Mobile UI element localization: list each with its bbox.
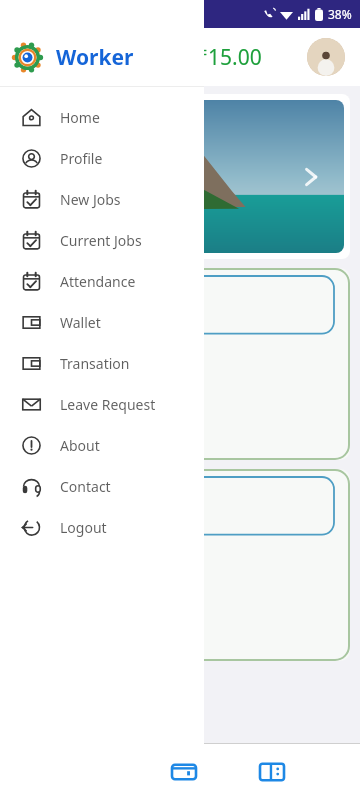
staticText: Current Jobs <box>60 231 142 250</box>
button[interactable]: li <box>10 268 350 460</box>
staticText: Logout <box>60 518 107 537</box>
button[interactable]: About <box>0 425 204 466</box>
button[interactable]: Leave Request <box>0 384 204 425</box>
staticText: Wallet <box>60 313 101 332</box>
staticText: Transation <box>60 354 130 373</box>
staticText: li <box>12 501 24 528</box>
button[interactable]: Wallet <box>140 744 228 800</box>
button[interactable]: Transation <box>0 343 204 384</box>
button[interactable] <box>16 100 344 253</box>
button[interactable]: Worker <box>0 28 204 86</box>
button[interactable]: li <box>10 469 350 661</box>
staticText: 38% <box>328 6 352 22</box>
button[interactable]: New Jobs <box>0 179 204 220</box>
button[interactable]: Dashboard <box>228 744 316 800</box>
staticText: ₹15.00 <box>196 43 262 72</box>
staticText: About <box>60 436 100 455</box>
staticText: New Jobs <box>60 190 121 209</box>
staticText: Attendance <box>60 272 136 291</box>
staticText: li <box>12 300 24 327</box>
staticText: Profile <box>60 149 103 168</box>
staticText: Leave Request <box>60 395 156 414</box>
staticText: Worker <box>56 43 134 72</box>
button[interactable]: Profile photo <box>307 38 345 76</box>
button[interactable]: Attendance <box>0 261 204 302</box>
staticText: ₹2 <box>12 378 32 401</box>
button[interactable]: Current Jobs <box>0 220 204 261</box>
staticText: Contact <box>60 477 111 496</box>
button[interactable]: Wallet <box>0 302 204 343</box>
button[interactable]: Logout <box>0 507 204 548</box>
button[interactable]: Contact <box>0 466 204 507</box>
button[interactable]: Home <box>0 97 204 138</box>
staticText: Home <box>60 108 100 127</box>
button[interactable]: Profile <box>0 138 204 179</box>
